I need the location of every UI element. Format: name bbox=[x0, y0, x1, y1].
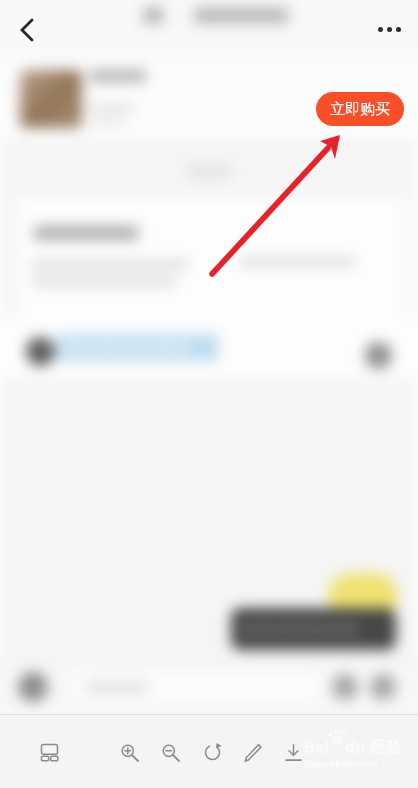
button[interactable]: Download bbox=[282, 741, 304, 763]
button[interactable]: Back bbox=[7, 11, 43, 47]
button[interactable]: More options bbox=[368, 8, 410, 50]
button[interactable]: Edit bbox=[241, 741, 263, 763]
button[interactable]: Zoom out bbox=[159, 741, 181, 763]
button[interactable]: Layout bbox=[38, 741, 60, 763]
button[interactable]: Rotate bbox=[201, 741, 223, 763]
staticText: 立即购买 bbox=[330, 100, 390, 119]
button[interactable]: 立即购买 bbox=[316, 92, 404, 126]
button[interactable]: Zoom in bbox=[118, 741, 140, 763]
